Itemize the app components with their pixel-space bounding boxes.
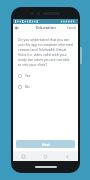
button[interactable]: Yes [18, 73, 73, 78]
button[interactable]: Back [56, 151, 78, 161]
button[interactable]: Back [13, 24, 21, 32]
staticText: Education [36, 25, 56, 31]
staticText: Cancel [67, 26, 76, 30]
staticText: Yes [25, 73, 31, 78]
button[interactable]: Home [34, 151, 56, 161]
staticText: Do you understand that you can use this … [18, 37, 73, 67]
staticText: Next [42, 142, 50, 146]
button[interactable]: Cancel [65, 24, 78, 32]
staticText: No [25, 84, 30, 89]
button[interactable]: Recent apps [13, 151, 34, 161]
button[interactable]: No [18, 84, 73, 89]
button[interactable]: Next [16, 140, 75, 148]
